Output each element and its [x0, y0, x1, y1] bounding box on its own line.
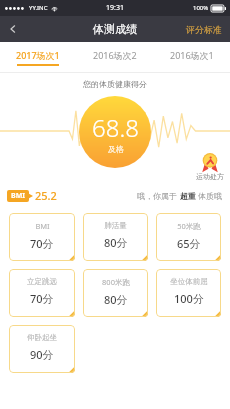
- staticText: 您的体质健康得分: [83, 79, 147, 89]
- button[interactable]: 运动处方: [196, 152, 224, 181]
- staticText: 25.2: [35, 188, 57, 203]
- staticText: 65分: [177, 236, 201, 251]
- button[interactable]: BMI: [9, 213, 75, 261]
- button[interactable]: Back: [0, 16, 26, 42]
- other: 运动处方: [200, 152, 220, 172]
- staticText: 运动处方: [196, 172, 224, 181]
- staticText: 2016场次1: [170, 49, 214, 61]
- button[interactable]: 800米跑: [83, 269, 148, 317]
- staticText: 70分: [30, 291, 54, 306]
- button[interactable]: 肺活量: [83, 213, 148, 261]
- button[interactable]: 评分标准: [178, 19, 230, 40]
- staticText: 100分: [174, 291, 204, 306]
- staticText: 超重: [180, 191, 196, 201]
- staticText: 800米跑: [102, 277, 130, 287]
- staticText: 及格: [108, 144, 124, 154]
- staticText: 70分: [30, 236, 54, 251]
- button[interactable]: 坐位体前屈: [156, 269, 221, 317]
- button[interactable]: 立定跳远: [9, 269, 75, 317]
- staticText: YY.INC: [29, 4, 48, 12]
- staticText: 68.8: [92, 111, 139, 144]
- button[interactable]: 仰卧起坐: [9, 325, 75, 373]
- staticText: 体质哦: [196, 190, 223, 201]
- button[interactable]: 50米跑: [156, 213, 221, 261]
- button[interactable]: 2016场次2: [76, 42, 153, 72]
- staticText: 立定跳远: [27, 277, 57, 286]
- staticText: 2017场次1: [16, 49, 60, 61]
- staticText: 50米跑: [177, 221, 201, 231]
- staticText: 80分: [104, 235, 128, 250]
- staticText: 仰卧起坐: [27, 333, 57, 342]
- staticText: 坐位体前屈: [170, 277, 208, 286]
- staticText: 100%: [193, 4, 209, 12]
- staticText: 肺活量: [104, 221, 127, 230]
- button[interactable]: 2017场次1: [0, 42, 76, 72]
- staticText: 哦，你属于: [137, 190, 180, 201]
- staticText: 体测成绩: [93, 22, 137, 36]
- staticText: 评分标准: [186, 24, 222, 35]
- staticText: 80分: [104, 292, 128, 307]
- button[interactable]: 68.8: [79, 96, 151, 168]
- staticText: 2016场次2: [93, 49, 137, 61]
- staticText: 19:31: [106, 3, 124, 13]
- button[interactable]: 2016场次1: [153, 42, 230, 72]
- staticText: BMI: [35, 221, 50, 231]
- staticText: 90分: [30, 347, 54, 362]
- staticText: BMI: [11, 191, 25, 201]
